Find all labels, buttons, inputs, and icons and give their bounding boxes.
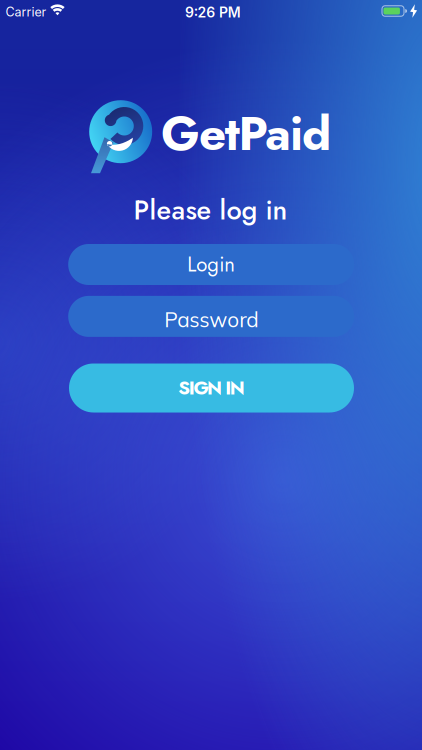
button[interactable]: SIGN IN xyxy=(69,363,354,412)
staticText: Carrier xyxy=(5,4,46,20)
staticText: SIGN IN xyxy=(178,374,245,402)
staticText: GetPaid xyxy=(161,99,331,168)
staticText: Please log in xyxy=(133,190,287,229)
staticText: Login xyxy=(187,250,235,279)
staticText: 9:26 PM xyxy=(185,4,241,21)
button[interactable]: Password xyxy=(68,296,354,337)
button[interactable]: Login xyxy=(68,244,354,285)
staticText: Password xyxy=(164,306,258,332)
